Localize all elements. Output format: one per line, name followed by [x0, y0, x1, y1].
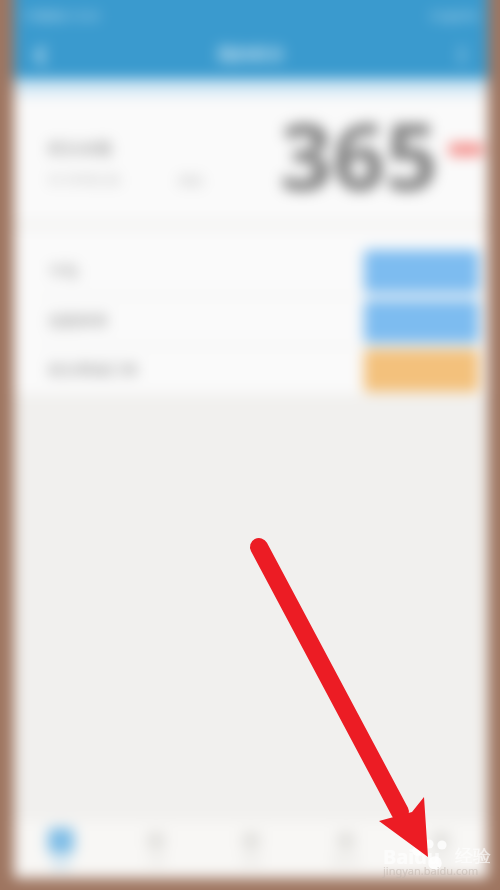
button[interactable]: 购物车 [298, 821, 393, 878]
staticText: 首页 [51, 858, 71, 871]
staticText: 经验 [455, 845, 491, 868]
staticText: Baidu [383, 843, 440, 870]
staticText: 我的 [431, 854, 451, 867]
button[interactable]: 积分商城订单 [14, 347, 488, 394]
button[interactable]: 发现 [203, 821, 298, 878]
button[interactable]: 首页 [14, 821, 108, 878]
button[interactable]: 卡包 [14, 247, 488, 296]
staticText: 365 [280, 92, 438, 217]
staticText: 积分商城订单 [48, 361, 138, 380]
button[interactable] [364, 250, 479, 293]
button[interactable]: 优惠券券 [14, 297, 488, 346]
staticText: 优惠券券 [48, 312, 108, 331]
button[interactable]: More [444, 37, 480, 73]
staticText: 中国移动 10:24 [24, 8, 99, 23]
staticText: 积分余额 [48, 139, 112, 159]
staticText: 我的积分 [217, 44, 285, 65]
button[interactable] [364, 349, 479, 392]
staticText: 4G ▮ 82% [430, 8, 478, 23]
staticText: 卡包 [48, 262, 78, 281]
button[interactable]: 我的 [393, 821, 488, 878]
button[interactable] [364, 300, 479, 343]
button[interactable]: Back [22, 37, 58, 73]
staticText: jingyan.baidu.com [383, 863, 479, 878]
button[interactable]: 分类 [108, 821, 203, 878]
